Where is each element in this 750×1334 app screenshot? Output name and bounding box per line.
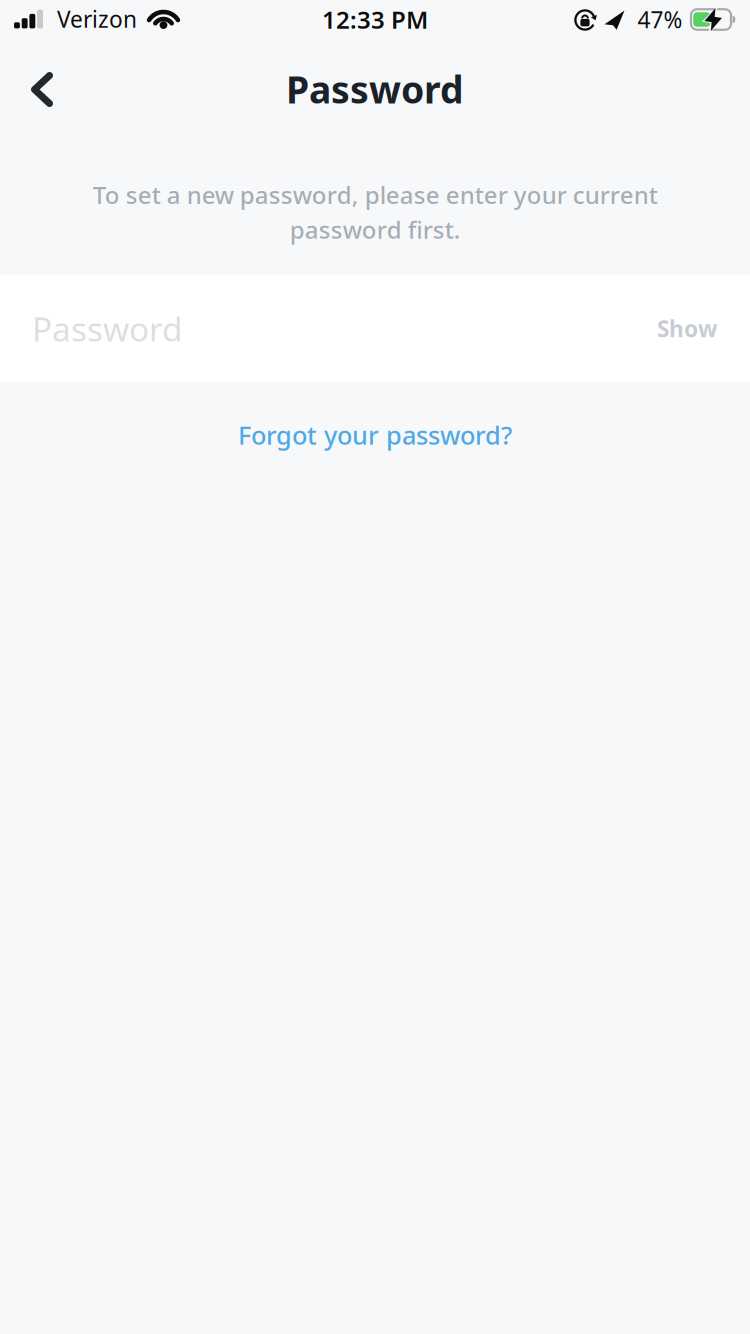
button[interactable]: Password	[0, 275, 637, 382]
staticText: 47%	[637, 4, 682, 34]
staticText: Verizon	[57, 4, 137, 34]
staticText: Forgot your password?	[238, 418, 512, 452]
staticText: Show	[657, 313, 717, 343]
button[interactable]: Back	[11, 58, 75, 122]
staticText: To set a new password, please enter your…	[92, 179, 657, 245]
staticText: 12:33 PM	[322, 4, 428, 35]
staticText: Password	[32, 306, 183, 351]
button[interactable]: Show	[637, 275, 750, 382]
staticText: Password	[286, 64, 464, 114]
button[interactable]: Forgot your password?	[228, 410, 522, 460]
